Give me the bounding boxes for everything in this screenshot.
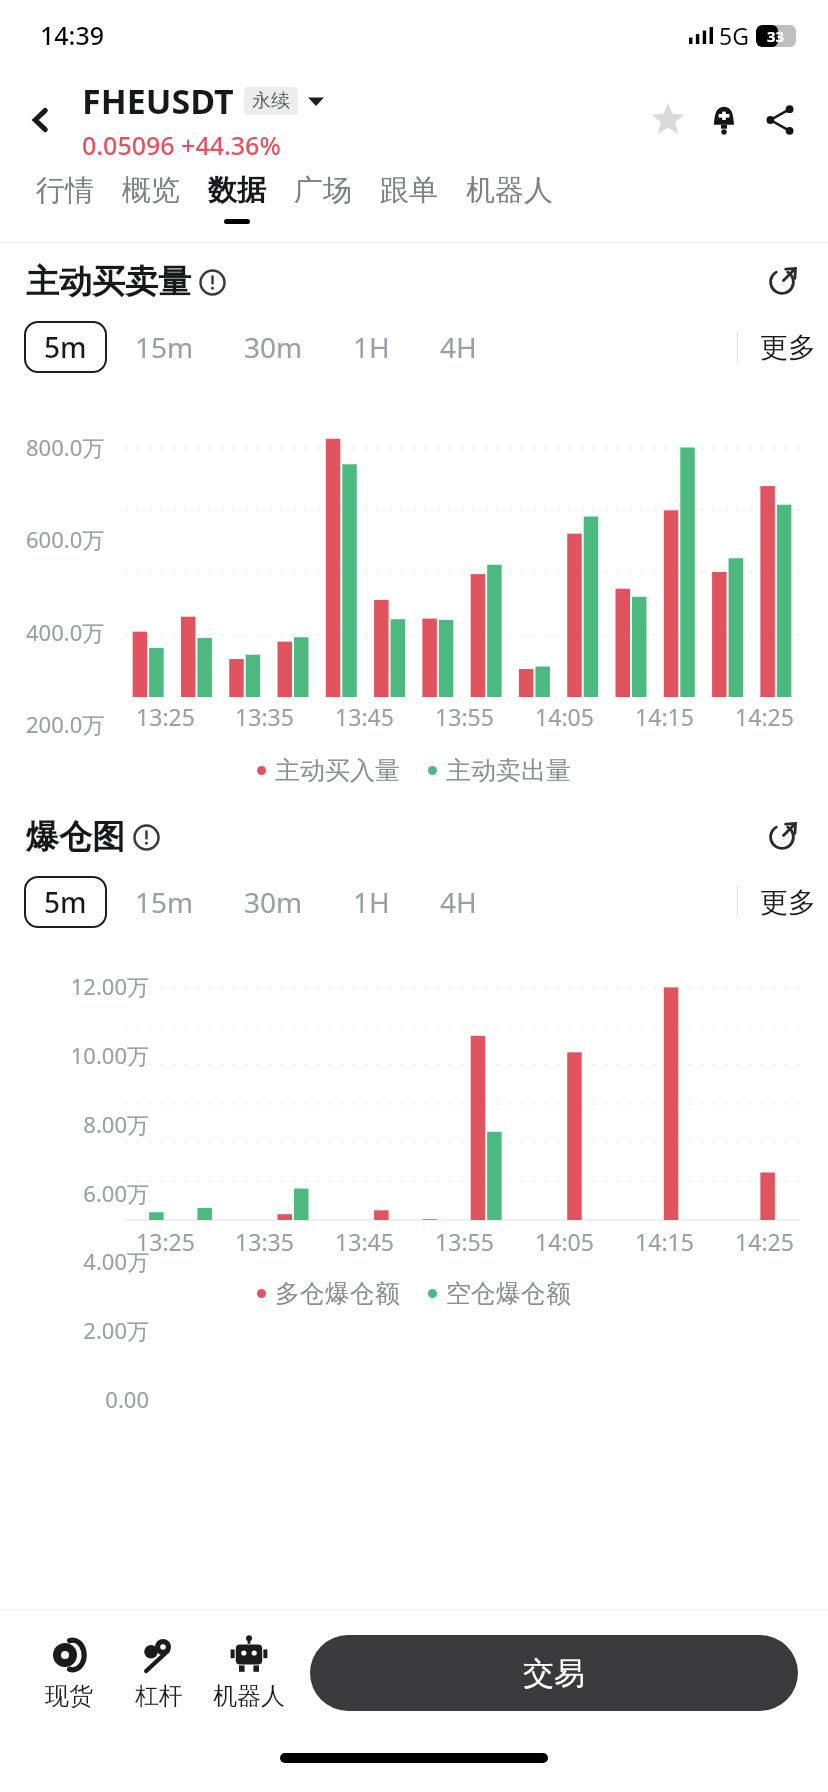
staticText: 200.0万 (26, 709, 105, 739)
staticText: 0.05096 +44.36% (82, 128, 281, 162)
staticText: 数据 (208, 172, 266, 209)
staticText: 1H (353, 883, 390, 921)
staticText: 概览 (122, 172, 180, 209)
staticText: 现货 (45, 1681, 93, 1711)
button[interactable]: 更多 (738, 330, 820, 365)
staticText: 800.0万 (26, 432, 105, 462)
button[interactable]: 30m (222, 319, 325, 375)
staticText: 跟单 (380, 172, 438, 209)
staticText: 8.00万 (20, 1109, 149, 1139)
button[interactable]: 数据 (194, 170, 280, 226)
staticText: 14:15 (635, 701, 694, 732)
staticText: 主动卖出量 (446, 755, 571, 786)
staticText: 30m (244, 883, 303, 921)
staticText: 空仓爆仓额 (446, 1278, 571, 1309)
staticText: 广场 (294, 172, 352, 209)
staticText: 13:25 (136, 701, 195, 732)
staticText: 400.0万 (26, 617, 105, 647)
button[interactable]: Back (18, 97, 64, 143)
staticText: 13:35 (235, 1226, 294, 1257)
button[interactable]: 行情 (22, 170, 108, 211)
button[interactable]: 概览 (108, 170, 194, 211)
staticText: 交易 (523, 1654, 585, 1693)
button[interactable]: 4H (418, 319, 499, 375)
button[interactable]: Info (199, 269, 226, 296)
staticText: 15m (135, 328, 194, 366)
staticText: 更多 (760, 885, 816, 920)
staticText: 4.00万 (20, 1246, 149, 1276)
button[interactable]: 机器人 (452, 170, 567, 211)
staticText: 13:55 (435, 1226, 494, 1257)
button[interactable]: 机器人 (204, 1635, 294, 1711)
staticText: 12.00万 (20, 971, 149, 1001)
button[interactable]: 现货 (24, 1635, 114, 1711)
staticText: 600.0万 (26, 524, 105, 554)
button[interactable]: 15m (113, 319, 216, 375)
staticText: 13:55 (435, 701, 494, 732)
staticText: 2.00万 (20, 1315, 149, 1345)
staticText: 5m (44, 883, 87, 921)
staticText: 10.00万 (20, 1040, 149, 1070)
staticText: 4H (440, 328, 477, 366)
button[interactable]: 5m (24, 876, 107, 928)
button[interactable]: Expand (762, 262, 802, 302)
staticText: 主动买卖量 (26, 261, 191, 303)
staticText: 多仓爆仓额 (275, 1278, 400, 1309)
button[interactable]: 4H (418, 874, 499, 930)
staticText: FHEUSDT (82, 78, 234, 124)
staticText: 13:45 (335, 701, 394, 732)
button[interactable]: 杠杆 (114, 1635, 204, 1711)
staticText: 6.00万 (20, 1178, 149, 1208)
button[interactable]: 5m (24, 321, 107, 373)
button[interactable]: Favorite (640, 92, 696, 148)
button[interactable]: Share (752, 92, 808, 148)
staticText: 14:05 (535, 1226, 594, 1257)
staticText: 4H (440, 883, 477, 921)
staticText: 15m (135, 883, 194, 921)
staticText: 5G (719, 20, 749, 51)
button[interactable]: 更多 (738, 885, 820, 920)
button[interactable]: 1H (331, 874, 412, 930)
staticText: 14:39 (40, 18, 105, 52)
staticText: 13:35 (235, 701, 294, 732)
staticText: 机器人 (213, 1681, 285, 1711)
staticText: 机器人 (466, 172, 553, 209)
staticText: 5m (44, 328, 87, 366)
staticText: 14:05 (535, 701, 594, 732)
button[interactable]: 跟单 (366, 170, 452, 211)
button[interactable]: Info (133, 824, 160, 851)
staticText: 主动买入量 (275, 755, 400, 786)
button[interactable]: 1H (331, 319, 412, 375)
staticText: 杠杆 (135, 1681, 183, 1711)
button[interactable]: 交易 (310, 1635, 798, 1711)
staticText: 1H (353, 328, 390, 366)
staticText: 14:25 (735, 701, 794, 732)
staticText: 行情 (36, 172, 94, 209)
staticText: 永续 (252, 89, 290, 113)
staticText: 爆仓图 (26, 816, 125, 858)
button[interactable]: Expand (762, 817, 802, 857)
staticText: 13:45 (335, 1226, 394, 1257)
staticText: 33 (767, 26, 785, 46)
staticText: 14:25 (735, 1226, 794, 1257)
button[interactable]: 广场 (280, 170, 366, 211)
button[interactable]: 30m (222, 874, 325, 930)
staticText: 13:25 (136, 1226, 195, 1257)
button[interactable]: Alerts (696, 92, 752, 148)
staticText: 更多 (760, 330, 816, 365)
staticText: 0.00 (20, 1384, 149, 1414)
button[interactable]: 15m (113, 874, 216, 930)
staticText: 30m (244, 328, 303, 366)
staticText: 14:15 (635, 1226, 694, 1257)
